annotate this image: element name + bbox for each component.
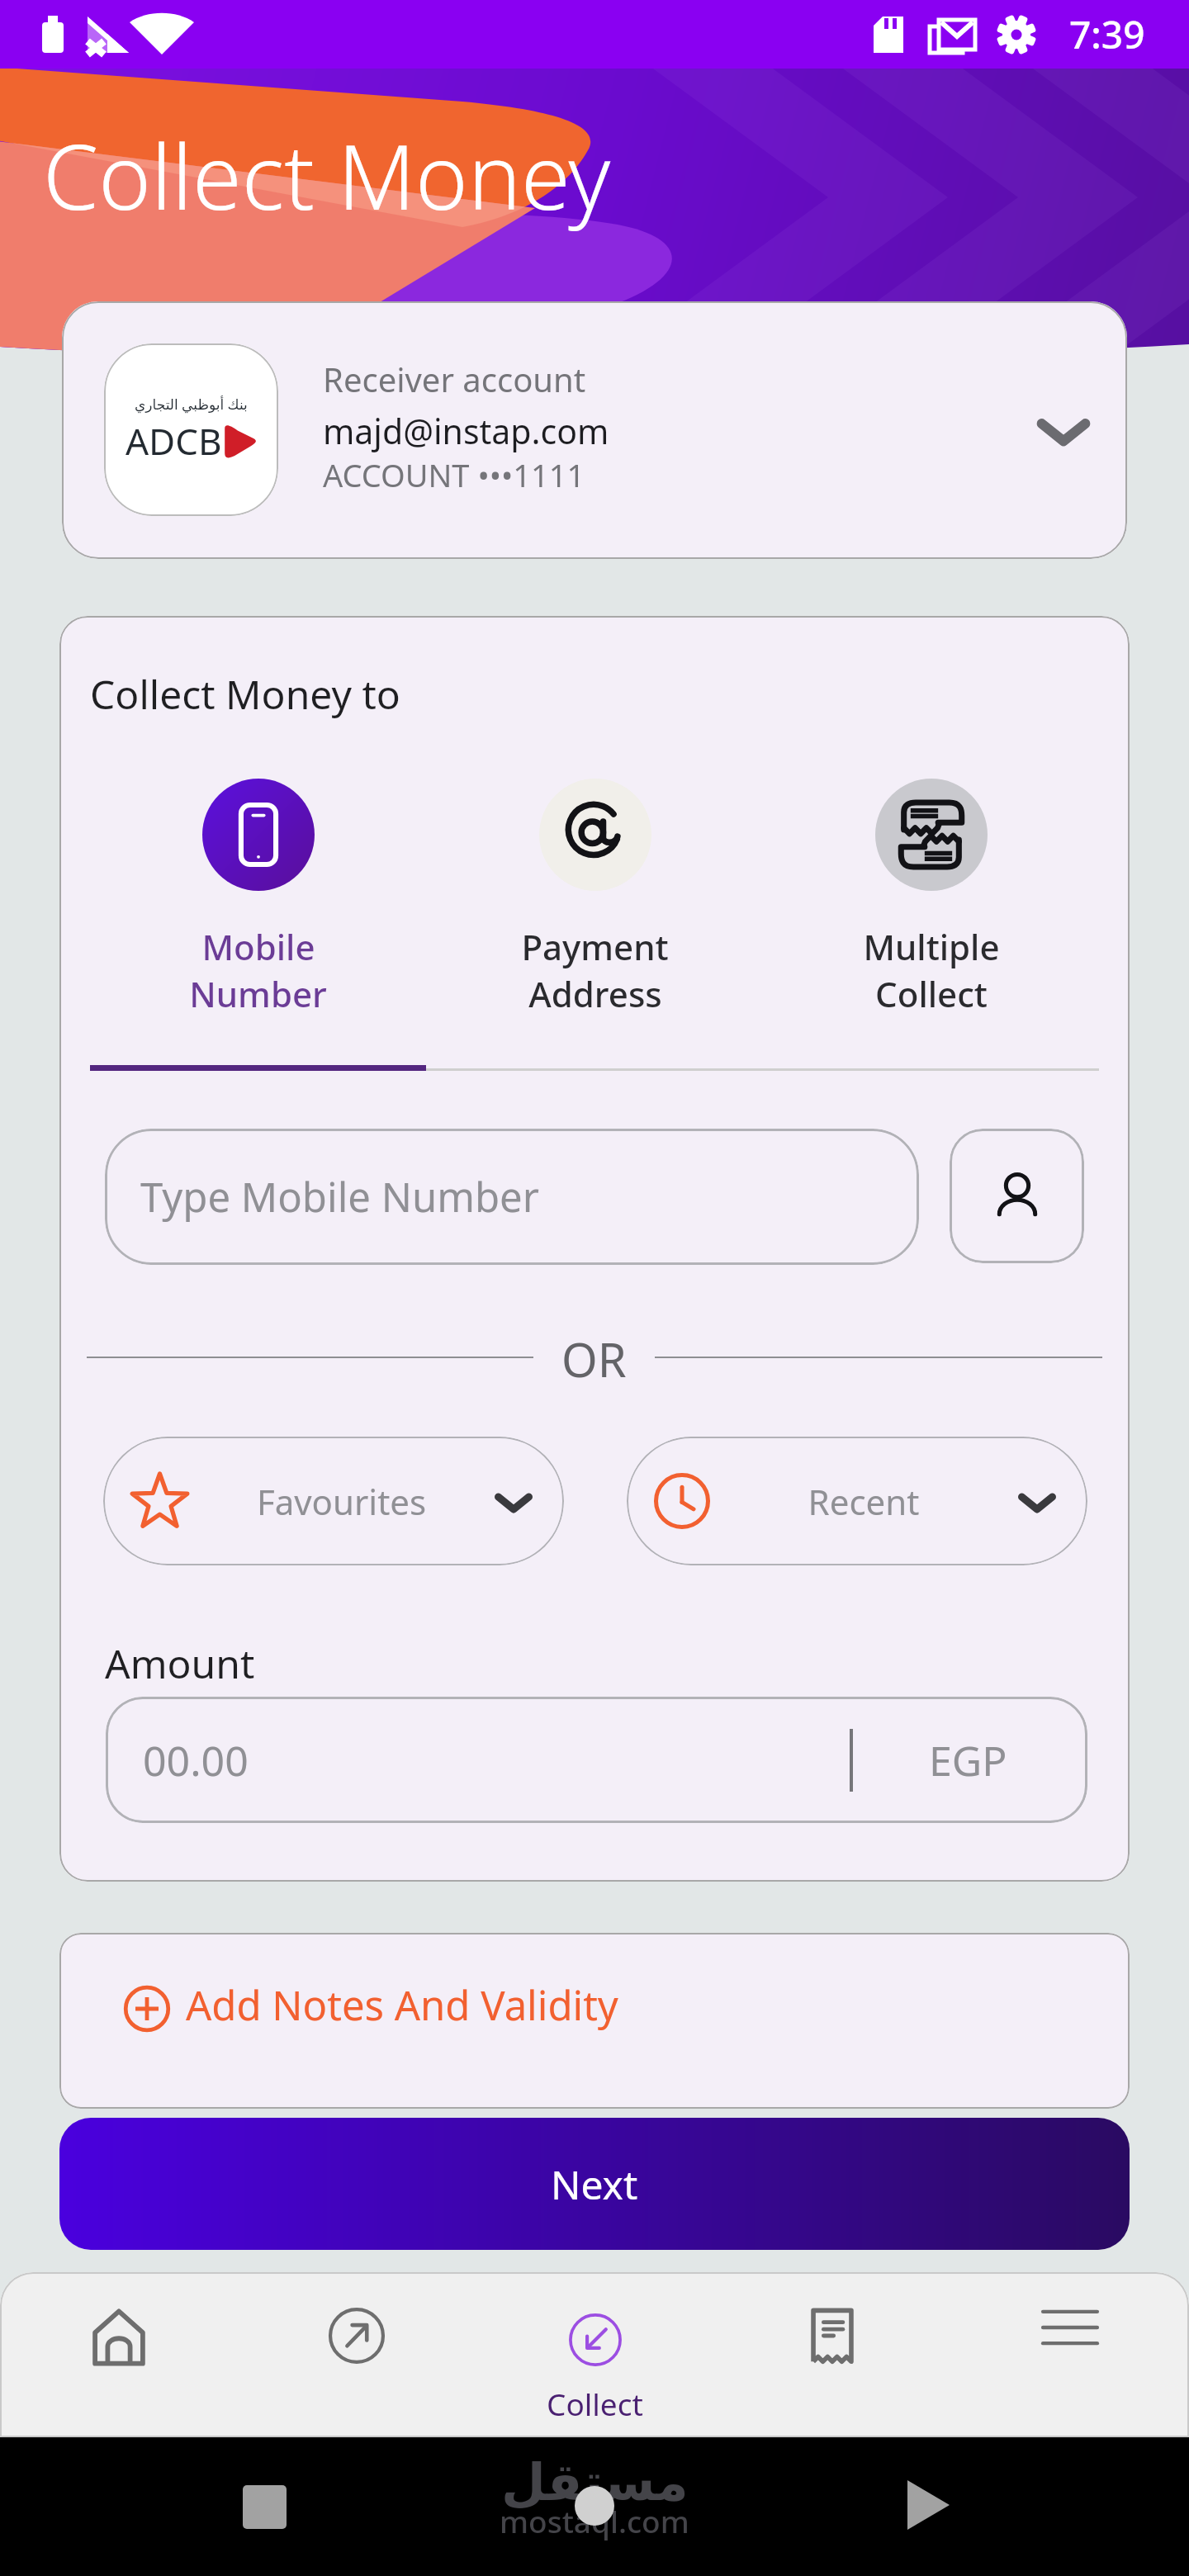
staticText: Collect: [875, 970, 988, 1017]
staticText: ADCB: [126, 416, 222, 466]
staticText: Collect Money: [43, 115, 611, 236]
staticText: Add Notes And Validity: [186, 1977, 618, 2033]
button[interactable]: Receiver account, majd@instap.com, chang…: [62, 301, 1127, 559]
staticText: Multiple: [863, 923, 1000, 970]
button[interactable]: 00.00: [106, 1697, 1087, 1823]
staticText: Number: [189, 970, 327, 1017]
staticText: Address: [528, 970, 662, 1017]
staticText: Collect Money to: [90, 667, 400, 721]
button[interactable]: Bills: [713, 2272, 951, 2437]
button[interactable]: Next: [59, 2118, 1130, 2250]
button[interactable]: Type Mobile Number: [105, 1129, 919, 1265]
staticText: Collect: [547, 2383, 643, 2424]
staticText: مستقل: [501, 2452, 689, 2512]
staticText: 7:39: [1069, 8, 1145, 60]
button[interactable]: Favourites: [103, 1437, 564, 1565]
staticText: EGP: [929, 1732, 1007, 1788]
button[interactable]: Add Notes And Validity: [59, 1933, 1130, 2109]
staticText: OR: [561, 1328, 627, 1387]
button[interactable]: Home: [0, 2272, 238, 2437]
button[interactable]: Menu: [951, 2272, 1189, 2437]
button[interactable]: Collect: [476, 2272, 713, 2437]
staticText: Mobile: [201, 923, 315, 970]
button[interactable]: Send money: [238, 2272, 476, 2437]
staticText: Recent: [711, 1478, 1016, 1525]
staticText: Type Mobile Number: [140, 1169, 539, 1224]
staticText: بنك أبوظبي التجاري: [135, 395, 248, 414]
staticText: Favourites: [190, 1478, 493, 1525]
button[interactable]: Payment: [429, 773, 760, 1029]
staticText: Next: [551, 2157, 638, 2211]
button[interactable]: Recent: [627, 1437, 1087, 1565]
staticText: Amount: [105, 1636, 255, 1690]
staticText: Receiver account: [323, 357, 586, 401]
staticText: ACCOUNT •••1111: [323, 453, 585, 496]
button[interactable]: Choose contact: [950, 1129, 1084, 1263]
staticText: mostaql.com: [500, 2500, 689, 2541]
staticText: Payment: [521, 923, 669, 970]
staticText: 00.00: [143, 1732, 249, 1788]
button[interactable]: Mobile: [92, 773, 423, 1029]
button[interactable]: Multiple: [766, 773, 1097, 1029]
staticText: majd@instap.com: [323, 408, 609, 454]
